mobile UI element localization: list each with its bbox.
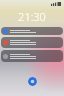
button[interactable]: [1, 50, 63, 62]
button[interactable]: [1, 27, 63, 35]
staticText: 21:30: [0, 9, 64, 24]
button[interactable]: Unlock: [28, 77, 37, 86]
button[interactable]: [1, 37, 63, 48]
